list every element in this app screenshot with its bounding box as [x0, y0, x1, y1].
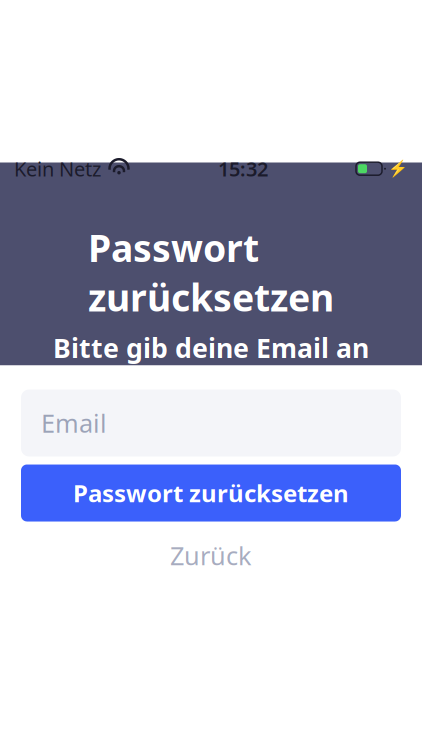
staticText: 15:32 — [218, 155, 268, 182]
button[interactable]: Zurück — [21, 537, 401, 573]
staticText: Passwort zurücksetzen — [88, 223, 334, 322]
staticText: Kein Netz — [14, 155, 101, 182]
staticText: ⚡ — [388, 160, 408, 178]
staticText: Bitte gib deine Email an — [53, 330, 369, 365]
staticText: Email — [41, 406, 107, 440]
staticText: Zurück — [170, 539, 252, 572]
button[interactable]: Passwort zurücksetzen — [21, 464, 401, 521]
staticText: Passwort zurücksetzen — [73, 477, 349, 509]
